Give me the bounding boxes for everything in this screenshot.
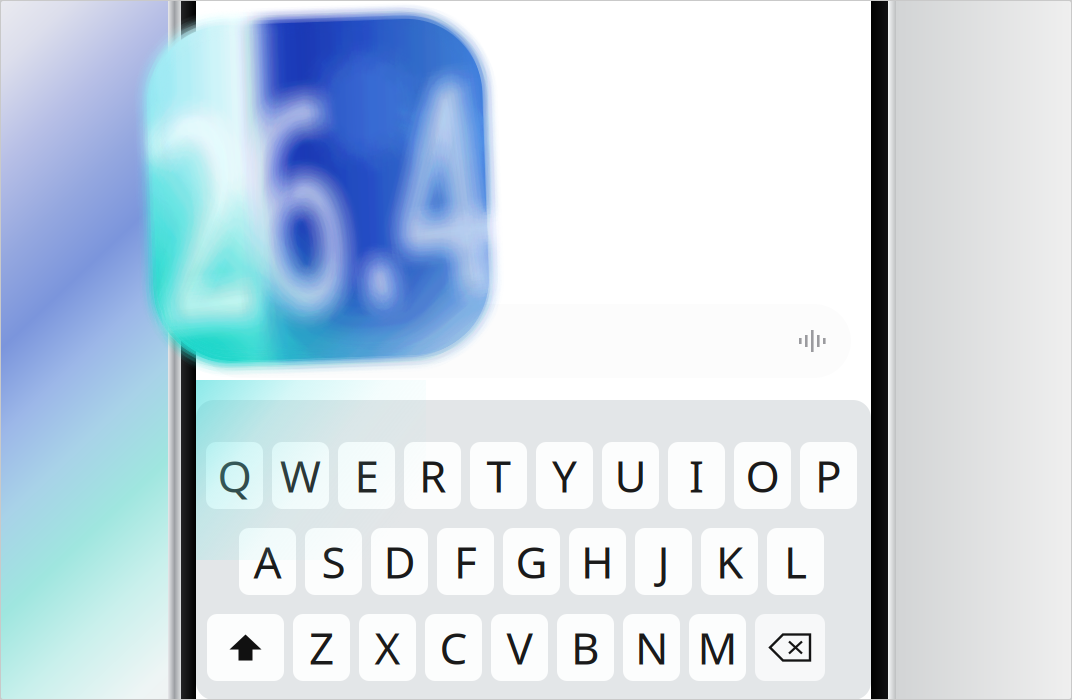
staticText: 26.4 <box>176 89 497 301</box>
button[interactable]: Z <box>293 614 350 681</box>
staticText: B <box>571 618 600 677</box>
staticText: 26.4 <box>162 77 483 289</box>
staticText: C <box>439 618 467 677</box>
button[interactable]: O <box>734 442 791 509</box>
staticText: 26.4 <box>166 90 487 302</box>
staticText: 26.4 <box>171 83 491 295</box>
staticText: 26.4 <box>155 95 475 307</box>
button[interactable]: Shift <box>207 614 284 681</box>
staticText: 26.4 <box>163 91 483 304</box>
staticText: 26.4 <box>173 97 494 310</box>
staticText: A <box>253 532 281 591</box>
staticText: 26.4 <box>160 104 481 317</box>
button[interactable]: Search field <box>203 304 851 378</box>
button[interactable]: F <box>437 528 494 595</box>
button[interactable]: A <box>239 528 296 595</box>
staticText: 26.4 <box>163 81 483 294</box>
button[interactable]: M <box>689 614 746 681</box>
button[interactable]: U <box>602 442 659 509</box>
button[interactable]: I <box>668 442 725 509</box>
staticText: 26.4 <box>147 91 468 303</box>
staticText: 26.4 <box>159 98 480 310</box>
staticText: 26.4 <box>173 87 494 299</box>
button[interactable]: B <box>557 614 614 681</box>
staticText: 26.4 <box>162 88 482 300</box>
button[interactable]: J <box>635 528 692 595</box>
button[interactable]: Y <box>536 442 593 509</box>
staticText: 26.4 <box>158 90 478 302</box>
staticText: 26.4 <box>165 74 485 286</box>
staticText: 26.4 <box>151 101 472 314</box>
staticText: 26.4 <box>155 87 475 299</box>
button[interactable]: Delete <box>755 614 825 681</box>
button[interactable]: H <box>569 528 626 595</box>
staticText: Y <box>552 446 577 505</box>
staticText: 26.4 <box>171 79 491 292</box>
staticText: V <box>506 618 532 677</box>
button[interactable]: Q <box>206 442 263 509</box>
staticText: 26.4 <box>168 86 488 298</box>
staticText: 26.4 <box>150 98 471 310</box>
staticText: 26.4 <box>155 87 476 299</box>
staticText: 26.4 <box>149 84 470 297</box>
staticText: 26.4 <box>153 90 473 303</box>
staticText: 26.4 <box>173 87 493 299</box>
staticText: 26.4 <box>159 98 479 310</box>
staticText: I <box>689 446 704 505</box>
staticText: 26.4 <box>165 97 486 310</box>
staticText: 26.4 <box>173 97 493 310</box>
staticText: 26.4 <box>157 102 477 314</box>
staticText: 26.4 <box>169 98 489 311</box>
button[interactable]: W <box>272 442 329 509</box>
staticText: 26.4 <box>160 84 480 297</box>
staticText: Q <box>217 446 251 505</box>
staticText: 26.4 <box>147 95 467 307</box>
staticText: 26.4 <box>155 99 475 311</box>
staticText: 26.4 <box>151 94 472 306</box>
staticText: 26.4 <box>144 90 464 302</box>
button[interactable]: V <box>491 614 548 681</box>
button[interactable]: R <box>404 442 461 509</box>
staticText: 26.4 <box>174 92 494 304</box>
staticText: 26.4 <box>169 98 490 311</box>
staticText: 26.4 <box>166 90 486 302</box>
button[interactable]: C <box>425 614 482 681</box>
button[interactable]: N <box>623 614 680 681</box>
staticText: K <box>716 532 743 591</box>
staticText: 26.4 <box>158 79 479 291</box>
staticText: 26.4 <box>162 100 483 313</box>
staticText: 26.4 <box>171 79 492 292</box>
staticText: 26.4 <box>143 90 464 302</box>
staticText: G <box>515 532 547 591</box>
button[interactable]: S <box>305 528 362 595</box>
staticText: 26.4 <box>158 93 478 306</box>
staticText: S <box>321 532 345 591</box>
staticText: 26.4 <box>161 104 481 317</box>
staticText: 26.4 <box>162 100 482 313</box>
staticText: 26.4 <box>155 99 476 311</box>
button[interactable]: D <box>371 528 428 595</box>
button[interactable]: L <box>767 528 824 595</box>
staticText: E <box>354 446 378 505</box>
staticText: O <box>745 446 779 505</box>
button[interactable]: G <box>503 528 560 595</box>
staticText: 26.4 <box>150 88 470 301</box>
button[interactable]: E <box>338 442 395 509</box>
staticText: 26.4 <box>153 84 474 296</box>
staticText: 26.4 <box>153 80 474 292</box>
button[interactable]: T <box>470 442 527 509</box>
staticText: N <box>635 618 668 677</box>
staticText: 26.4 <box>145 86 466 299</box>
button[interactable]: P <box>800 442 857 509</box>
staticText: 26.4 <box>166 81 487 293</box>
staticText: 26.4 <box>159 79 479 291</box>
staticText: 26.4 <box>157 90 478 302</box>
staticText: 26.4 <box>165 74 486 286</box>
staticText: U <box>614 446 646 505</box>
staticText: 26.4 <box>166 102 486 314</box>
button[interactable]: X <box>359 614 416 681</box>
staticText: 26.4 <box>152 75 473 288</box>
button[interactable]: K <box>701 528 758 595</box>
staticText: 26.4 <box>171 75 491 288</box>
staticText: 26.4 <box>146 95 467 307</box>
